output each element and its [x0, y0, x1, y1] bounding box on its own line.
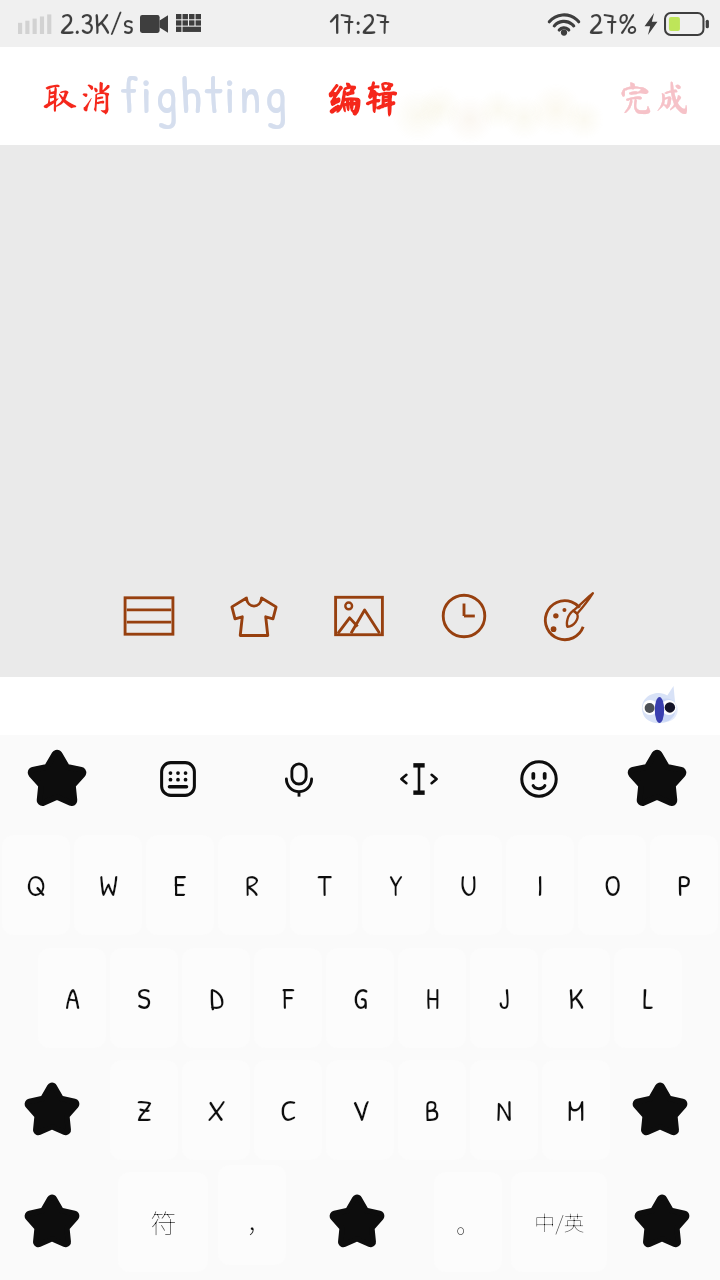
button[interactable]: Special key	[312, 1172, 402, 1272]
button[interactable]: Keyboard tool	[11, 737, 103, 821]
button[interactable]: M	[542, 1060, 610, 1160]
button[interactable]: A	[38, 948, 106, 1048]
button[interactable]: Special key	[7, 1172, 97, 1272]
staticText: R	[245, 865, 259, 906]
staticText: 取消	[42, 79, 115, 115]
staticText: L	[642, 978, 654, 1019]
button[interactable]: Palette	[526, 573, 612, 659]
button[interactable]: Keyboard tool	[493, 737, 585, 821]
staticText: 符	[150, 1203, 177, 1241]
button[interactable]: Duration	[421, 573, 507, 659]
staticText: F	[282, 978, 294, 1019]
staticText: E	[173, 865, 187, 906]
button[interactable]: Background image	[316, 573, 402, 659]
button[interactable]: Special key	[615, 1060, 705, 1160]
staticText: V	[352, 1090, 369, 1131]
staticText: A	[65, 978, 80, 1019]
staticText: 27%	[589, 3, 638, 44]
button[interactable]: F	[254, 948, 322, 1048]
staticText: H	[425, 978, 440, 1019]
button[interactable]: 。	[434, 1172, 502, 1272]
button[interactable]: J	[470, 948, 538, 1048]
staticText: P	[677, 865, 692, 906]
button[interactable]: Keyboard tool	[373, 737, 465, 821]
button[interactable]: 完成	[614, 71, 695, 123]
button[interactable]: S	[110, 948, 178, 1048]
button[interactable]: W	[74, 835, 142, 935]
button[interactable]: Theme skin	[211, 573, 297, 659]
button[interactable]: Q	[2, 835, 70, 935]
button[interactable]: 中/英	[511, 1172, 607, 1272]
staticText: X	[207, 1090, 226, 1131]
button[interactable]: X	[182, 1060, 250, 1160]
button[interactable]: P	[650, 835, 718, 935]
staticText: S	[137, 978, 151, 1019]
button[interactable]: Keyboard layout	[106, 573, 192, 659]
button[interactable]: R	[218, 835, 286, 935]
staticText: C	[280, 1090, 297, 1131]
button[interactable]: 编辑	[322, 71, 404, 124]
staticText: N	[496, 1090, 512, 1131]
staticText: W	[99, 865, 118, 906]
staticText: G	[353, 978, 368, 1019]
staticText: 完成	[618, 79, 691, 115]
button[interactable]: 取消	[38, 71, 119, 123]
button[interactable]: G	[326, 948, 394, 1048]
button[interactable]: Keyboard tool	[132, 737, 224, 821]
button[interactable]: Special key	[617, 1172, 707, 1272]
staticText: J	[498, 978, 510, 1019]
button[interactable]: U	[434, 835, 502, 935]
staticText: Q	[26, 865, 46, 906]
button[interactable]: H	[398, 948, 466, 1048]
button[interactable]: Z	[110, 1060, 178, 1160]
button[interactable]: E	[146, 835, 214, 935]
staticText: B	[424, 1090, 440, 1131]
staticText: 2.3K/s	[60, 3, 134, 44]
staticText: U	[460, 865, 477, 906]
button[interactable]: Y	[362, 835, 430, 935]
button[interactable]: ,	[218, 1165, 286, 1265]
button[interactable]: V	[326, 1060, 394, 1160]
button[interactable]: Keyboard tool	[611, 737, 703, 821]
button[interactable]: 符	[118, 1172, 208, 1272]
staticText: ,	[248, 1191, 256, 1240]
staticText: O	[604, 865, 621, 906]
staticText: 编辑	[326, 79, 400, 116]
staticText: K	[568, 978, 584, 1019]
button[interactable]: I	[506, 835, 574, 935]
button[interactable]: Special key	[7, 1060, 97, 1160]
button[interactable]: K	[542, 948, 610, 1048]
staticText: Y	[389, 865, 403, 906]
button[interactable]: N	[470, 1060, 538, 1160]
staticText: 中/英	[534, 1207, 585, 1237]
staticText: D	[209, 978, 224, 1019]
button[interactable]: O	[578, 835, 646, 935]
button[interactable]: D	[182, 948, 250, 1048]
staticText: Z	[136, 1090, 152, 1131]
staticText: M	[567, 1090, 585, 1131]
staticText: I	[536, 865, 544, 906]
staticText: fighting	[120, 61, 290, 129]
button[interactable]: Input method logo	[634, 683, 686, 735]
button[interactable]: L	[614, 948, 682, 1048]
button[interactable]: C	[254, 1060, 322, 1160]
button[interactable]: Keyboard tool	[253, 737, 345, 821]
button[interactable]: T	[290, 835, 358, 935]
staticText: 17:27	[329, 3, 391, 44]
staticText: 。	[456, 1205, 480, 1240]
button[interactable]: B	[398, 1060, 466, 1160]
staticText: T	[317, 865, 332, 906]
